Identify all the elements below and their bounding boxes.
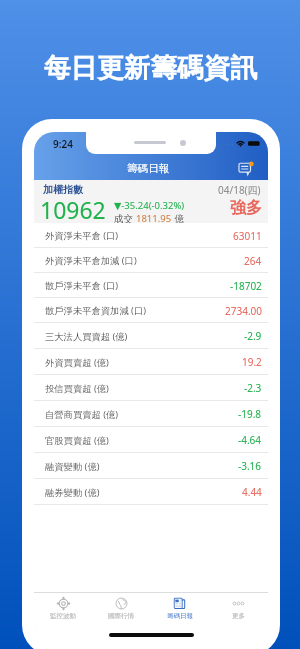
staticText: 更多 [232, 612, 245, 620]
staticText: 成交 [114, 212, 136, 225]
button[interactable]: 籌碼日報 [150, 593, 209, 624]
staticText: 官股買賣超 (億) [45, 434, 109, 447]
staticText: 籌碼日報 [127, 162, 170, 175]
button[interactable]: 融資變動 (億) [34, 453, 268, 479]
button[interactable]: 投信買賣超 (億) [34, 375, 268, 401]
staticText: 籌碼日報 [167, 612, 193, 620]
button[interactable]: 官股買賣超 (億) [34, 427, 268, 453]
staticText: 外資買賣超 (億) [45, 356, 109, 369]
staticText: 億 [172, 212, 184, 225]
staticText: 10962 [40, 194, 106, 225]
staticText: -4.64 [238, 433, 262, 447]
staticText: 自營商買賣超 (億) [45, 408, 119, 421]
button[interactable]: Messages [238, 161, 254, 177]
button[interactable]: 散戶淨未平倉 (口) [34, 273, 268, 298]
staticText: -2.9 [244, 329, 262, 343]
staticText: -19.8 [238, 407, 262, 421]
button[interactable]: 融券變動 (億) [34, 479, 268, 505]
button[interactable]: 外資買賣超 (億) [34, 349, 268, 375]
staticText: 外資淨未平倉 (口) [45, 229, 119, 242]
staticText: 9:24 [53, 137, 73, 151]
staticText: 每日更新籌碼資訊 [44, 51, 257, 85]
staticText: -18702 [230, 279, 262, 293]
staticText: 三大法人買賣超 (億) [45, 330, 128, 343]
button[interactable]: 外資淨未平倉加減 (口) [34, 248, 268, 273]
staticText: 監控波動 [50, 612, 76, 620]
button[interactable]: 散戶淨未平倉資加減 (口) [34, 298, 268, 323]
staticText: 264 [244, 254, 262, 268]
staticText: 4.44 [242, 485, 262, 499]
button[interactable]: 三大法人買賣超 (億) [34, 323, 268, 349]
staticText: 04/18(四) [218, 183, 261, 197]
button[interactable]: 監控波動 [34, 593, 92, 624]
staticText: 融資變動 (億) [45, 460, 100, 473]
staticText: 強多 [230, 198, 262, 218]
button[interactable]: 國際行情 [92, 593, 150, 624]
staticText: ▼-35.24(-0.32%) [114, 199, 185, 212]
staticText: 19.2 [242, 355, 262, 369]
staticText: 63011 [233, 229, 262, 243]
staticText: -2.3 [244, 381, 262, 395]
staticText: 國際行情 [108, 612, 134, 620]
staticText: 散戶淨未平倉資加減 (口) [45, 304, 146, 317]
staticText: 1811.95 [136, 212, 172, 225]
button[interactable]: 外資淨未平倉 (口) [34, 223, 268, 248]
staticText: 散戶淨未平倉 (口) [45, 279, 119, 292]
button[interactable]: 更多 [209, 593, 268, 624]
staticText: 2734.00 [225, 304, 262, 318]
staticText: 加權指數 [43, 183, 83, 196]
staticText: 外資淨未平倉加減 (口) [45, 254, 137, 267]
staticText: -3.16 [238, 459, 262, 473]
staticText: 投信買賣超 (億) [45, 382, 109, 395]
staticText: 融券變動 (億) [45, 486, 100, 499]
button[interactable]: 自營商買賣超 (億) [34, 401, 268, 427]
